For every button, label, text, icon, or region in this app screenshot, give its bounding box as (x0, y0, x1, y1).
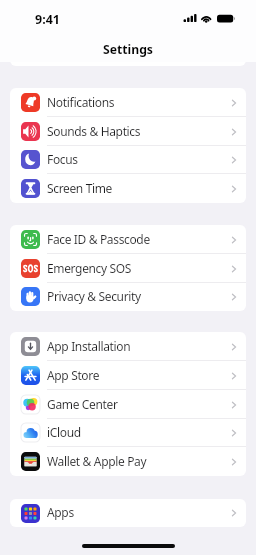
button[interactable]: Focus (10, 145, 246, 174)
button[interactable]: Face ID & Passcode (10, 225, 246, 254)
staticText: App Store (47, 367, 100, 383)
button[interactable]: Emergency SOS (10, 254, 246, 283)
staticText: Wallet & Apple Pay (47, 453, 147, 469)
staticText: Sounds & Haptics (47, 123, 141, 139)
staticText: Game Center (47, 396, 118, 412)
staticText: Apps (47, 504, 74, 520)
button[interactable]: Screen Time (10, 174, 246, 203)
staticText: App Installation (47, 338, 131, 354)
button[interactable]: Privacy & Security (10, 282, 246, 311)
button[interactable]: Game Center (10, 390, 246, 419)
button[interactable]: iCloud (10, 418, 246, 447)
staticText: 9:41 (35, 11, 60, 28)
staticText: Privacy & Security (47, 288, 141, 304)
staticText: Emergency SOS (47, 260, 132, 276)
button[interactable]: Wallet & Apple Pay (10, 447, 246, 476)
button[interactable]: App Store (10, 361, 246, 390)
button[interactable]: Apps (10, 499, 246, 527)
staticText: Settings (103, 41, 153, 58)
staticText: Notifications (47, 94, 115, 110)
staticText: iCloud (47, 424, 81, 440)
button[interactable]: App Installation (10, 332, 246, 361)
staticText: Screen Time (47, 180, 113, 196)
button[interactable]: Sounds & Haptics (10, 117, 246, 146)
button[interactable]: Notifications (10, 88, 246, 117)
staticText: Face ID & Passcode (47, 231, 150, 247)
staticText: Focus (47, 151, 78, 167)
